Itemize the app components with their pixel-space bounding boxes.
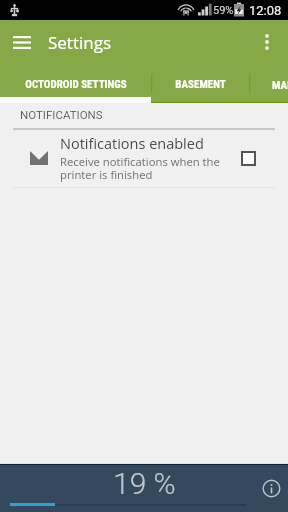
button[interactable]: MAIN — [249, 64, 288, 102]
button[interactable] — [0, 129, 288, 188]
button[interactable]: Open navigation menu — [5, 25, 39, 59]
button[interactable]: Info — [257, 474, 285, 502]
staticText: Receive notifications when the printer i… — [60, 154, 222, 183]
button[interactable]: OCTODROID SETTINGS — [0, 64, 151, 102]
staticText: 19 % — [113, 466, 176, 501]
button[interactable]: BASEMENT — [151, 64, 249, 102]
staticText: Notifications enabled — [60, 134, 204, 154]
staticText: MAIN — [272, 79, 288, 92]
staticText: NOTIFICATIONS — [20, 108, 103, 121]
staticText: BASEMENT — [175, 78, 226, 91]
staticText: OCTODROID SETTINGS — [25, 78, 127, 91]
staticText: 12:08 — [249, 3, 282, 18]
staticText: 59% — [213, 4, 234, 17]
button[interactable]: More options — [250, 25, 284, 59]
staticText: Settings — [48, 31, 112, 54]
